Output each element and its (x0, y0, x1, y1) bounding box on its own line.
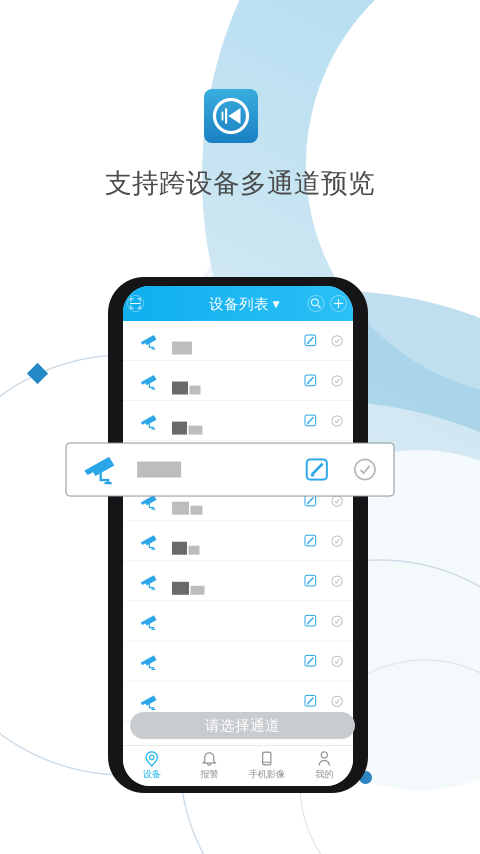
staticText: 设备 (143, 768, 161, 780)
button[interactable]: Search (305, 293, 326, 314)
button[interactable] (123, 521, 353, 561)
button[interactable] (123, 601, 353, 641)
staticText: 支持跨设备多通道预览 (105, 167, 375, 200)
button[interactable]: Scan (125, 293, 146, 314)
button[interactable]: 请选择通道 (130, 712, 355, 739)
button[interactable] (123, 681, 353, 721)
staticText: 设备列表 (209, 295, 269, 313)
button[interactable]: 我的 (295, 745, 353, 785)
button[interactable]: 报警 (180, 745, 238, 785)
button[interactable] (123, 321, 353, 361)
button[interactable] (123, 361, 353, 401)
button[interactable] (123, 561, 353, 601)
button[interactable] (123, 481, 353, 521)
button[interactable]: 设备 (123, 745, 180, 785)
button[interactable]: 手机影像 (238, 745, 295, 785)
button[interactable] (123, 401, 353, 441)
staticText: 请选择通道 (205, 716, 280, 734)
button[interactable] (123, 641, 353, 681)
button[interactable] (123, 441, 353, 481)
staticText: 手机影像 (249, 768, 285, 780)
staticText: ▼ (272, 299, 279, 309)
staticText: 报警 (200, 768, 218, 780)
staticText: 我的 (315, 768, 333, 780)
button[interactable]: Add device (328, 293, 349, 314)
